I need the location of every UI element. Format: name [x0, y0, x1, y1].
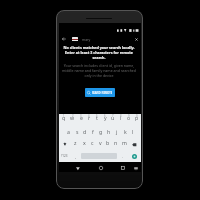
button[interactable]: l: [129, 126, 137, 138]
button[interactable]: 9: [125, 114, 133, 126]
button[interactable]: v: [96, 138, 104, 150]
staticText: t: [96, 114, 98, 121]
staticText: 9: [128, 114, 130, 118]
staticText: i: [120, 114, 122, 121]
button[interactable]: a: [64, 126, 73, 138]
button[interactable]: c: [88, 138, 96, 150]
button[interactable]: Backspace: [128, 138, 141, 150]
button[interactable]: 7: [109, 114, 117, 126]
button[interactable]: d: [81, 126, 89, 138]
staticText: 8: [120, 114, 122, 118]
button[interactable]: h: [105, 126, 113, 138]
button[interactable]: Home: [96, 163, 105, 173]
staticText: c: [91, 139, 94, 146]
staticText: z: [74, 139, 77, 146]
button[interactable]: Hide keyboard: [131, 163, 140, 173]
staticText: w: [70, 114, 75, 121]
staticText: d: [83, 128, 87, 135]
button[interactable]: Back: [59, 34, 68, 44]
staticText: s: [76, 128, 79, 135]
staticText: k: [124, 128, 127, 135]
button[interactable]: 5: [93, 114, 101, 126]
staticText: .: [122, 154, 124, 159]
button[interactable]: Shift: [59, 138, 71, 150]
button[interactable]: g: [97, 126, 105, 138]
staticText: b: [106, 139, 110, 146]
button[interactable]: Enter: [128, 150, 141, 162]
button[interactable]: 8: [117, 114, 125, 126]
button[interactable]: ?123: [59, 150, 70, 162]
staticText: 3: [80, 114, 82, 118]
staticText: 2: [72, 114, 74, 118]
staticText: mary: [82, 37, 91, 42]
button[interactable]: ,: [70, 150, 81, 162]
button[interactable]: 4: [85, 114, 93, 126]
button[interactable]: 1: [59, 114, 68, 126]
staticText: u: [111, 114, 115, 121]
staticText: ?123: [61, 154, 68, 158]
staticText: 4: [88, 114, 90, 118]
staticText: No clients matched your search locally. …: [61, 45, 137, 60]
staticText: a: [67, 128, 70, 135]
button[interactable]: Back: [73, 163, 82, 173]
staticText: x: [83, 139, 86, 146]
staticText: 1: [63, 114, 65, 118]
button[interactable]: Recent apps: [118, 163, 127, 173]
button[interactable]: j: [113, 126, 121, 138]
button[interactable]: Clear search: [132, 34, 141, 44]
button[interactable]: 2: [68, 114, 77, 126]
button[interactable]: k: [121, 126, 129, 138]
button[interactable]: 3: [77, 114, 85, 126]
staticText: Your search includes client id, given na…: [61, 63, 137, 78]
staticText: h: [107, 128, 111, 135]
staticText: p: [135, 114, 139, 121]
button[interactable]: SEARCH REMOTE: [85, 88, 115, 97]
staticText: m: [122, 139, 127, 146]
button[interactable]: x: [80, 138, 88, 150]
staticText: y: [104, 114, 107, 121]
staticText: q: [62, 114, 66, 121]
staticText: l: [132, 128, 134, 135]
button[interactable]: 0: [133, 114, 141, 126]
staticText: 6: [104, 114, 106, 118]
staticText: n: [114, 139, 118, 146]
staticText: 0: [136, 114, 138, 118]
staticText: ,: [75, 154, 77, 159]
staticText: r: [88, 114, 91, 121]
button[interactable]: s: [73, 126, 81, 138]
staticText: g: [99, 128, 103, 135]
staticText: j: [116, 128, 118, 135]
button[interactable]: m: [120, 138, 128, 150]
staticText: e: [80, 114, 83, 121]
staticText: v: [99, 139, 102, 146]
button[interactable]: Choose country: [72, 37, 78, 41]
button[interactable]: n: [112, 138, 120, 150]
button[interactable]: f: [89, 126, 97, 138]
staticText: SEARCH REMOTE: [92, 91, 113, 94]
button[interactable]: 6: [101, 114, 109, 126]
button[interactable]: z: [71, 138, 80, 150]
staticText: f: [92, 128, 94, 135]
staticText: o: [127, 114, 131, 121]
button[interactable]: b: [104, 138, 112, 150]
staticText: 5: [96, 114, 98, 118]
staticText: 7: [112, 114, 114, 118]
